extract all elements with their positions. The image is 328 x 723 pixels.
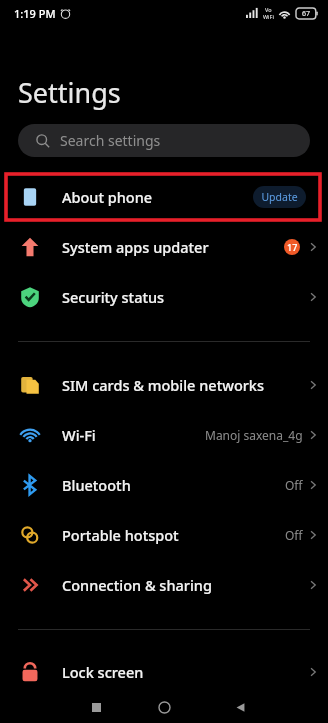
- staticText: Manoj saxena_4g: [205, 427, 303, 443]
- button[interactable]: Update: [253, 186, 306, 208]
- staticText: SIM cards & mobile networks: [62, 375, 265, 395]
- button[interactable]: Recent apps: [86, 697, 106, 717]
- staticText: 17: [287, 241, 298, 253]
- staticText: System apps updater: [62, 237, 209, 257]
- button[interactable]: Security status: [0, 272, 328, 322]
- button[interactable]: SIM cards & mobile networks: [0, 360, 328, 410]
- staticText: Off: [285, 477, 303, 493]
- staticText: Update: [261, 190, 298, 204]
- button[interactable]: Search settings: [18, 124, 310, 157]
- button[interactable]: Lock screen: [0, 647, 328, 697]
- staticText: WiFi: [263, 13, 274, 20]
- staticText: Lock screen: [62, 662, 144, 682]
- button[interactable]: Portable hotspot: [0, 510, 328, 560]
- staticText: Wi-Fi: [62, 425, 96, 445]
- staticText: Portable hotspot: [62, 525, 179, 545]
- button[interactable]: System apps updater: [0, 222, 328, 272]
- staticText: Settings: [18, 74, 121, 111]
- button[interactable]: Wi-Fi: [0, 410, 328, 460]
- button[interactable]: Bluetooth: [0, 460, 328, 510]
- staticText: Connection & sharing: [62, 575, 212, 595]
- staticText: 1:19 PM: [14, 6, 56, 21]
- staticText: Off: [285, 527, 303, 543]
- staticText: Vo: [265, 6, 272, 13]
- staticText: About phone: [62, 187, 153, 207]
- button[interactable]: About phone: [0, 172, 328, 222]
- button[interactable]: Connection & sharing: [0, 560, 328, 610]
- button[interactable]: Back: [230, 697, 250, 717]
- staticText: Bluetooth: [62, 475, 131, 495]
- staticText: Security status: [62, 287, 165, 307]
- staticText: 67: [302, 9, 311, 19]
- staticText: Search settings: [60, 131, 161, 150]
- button[interactable]: Home: [152, 695, 176, 719]
